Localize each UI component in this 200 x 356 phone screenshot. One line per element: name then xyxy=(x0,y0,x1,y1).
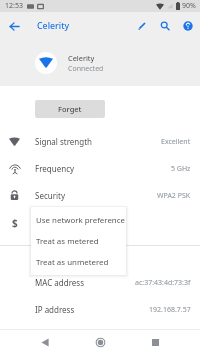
staticText: Connected xyxy=(68,64,104,74)
staticText: ac:37:43:4d:73:3f xyxy=(135,278,191,288)
button[interactable]: MAC address xyxy=(0,269,200,296)
staticText: Security xyxy=(35,190,66,201)
staticText: WPA2 PSK xyxy=(157,191,191,201)
staticText: Celerity xyxy=(68,53,95,63)
staticText: Treat as metered xyxy=(36,236,99,247)
button[interactable]: Use network preference xyxy=(31,210,126,231)
staticText: Celerity xyxy=(37,20,70,32)
button[interactable]: Recent apps xyxy=(140,329,170,356)
staticText: 5 GHz xyxy=(171,164,191,174)
button[interactable]: Frequency xyxy=(0,155,200,182)
button[interactable]: Search xyxy=(154,15,176,37)
staticText: 192.168.7.57 xyxy=(149,305,191,315)
button[interactable]: Home xyxy=(85,329,115,356)
button[interactable]: Forget xyxy=(35,100,105,118)
staticText: Use network preference xyxy=(36,215,125,226)
staticText: Gateway xyxy=(35,331,68,342)
button[interactable]: Security xyxy=(0,182,200,209)
staticText: Network usage xyxy=(35,217,92,228)
button[interactable]: IP address xyxy=(0,296,200,323)
staticText: 90% xyxy=(182,1,196,11)
staticText: $ xyxy=(12,216,18,229)
button[interactable]: Treat as unmetered xyxy=(31,252,126,273)
staticText: Signal strength xyxy=(35,136,93,147)
staticText: 192.168.7.1 xyxy=(153,332,191,342)
button[interactable]: Signal strength xyxy=(0,128,200,155)
staticText: Excellent xyxy=(161,137,191,147)
button[interactable]: Edit xyxy=(131,15,153,37)
button[interactable]: Navigate up xyxy=(0,12,28,40)
staticText: MAC address xyxy=(35,277,84,288)
staticText: Forget xyxy=(58,104,82,114)
button[interactable]: Back xyxy=(30,329,60,356)
button[interactable]: Help xyxy=(177,15,199,37)
button[interactable]: $ xyxy=(0,209,200,236)
button[interactable]: Gateway xyxy=(0,323,200,350)
staticText: IP address xyxy=(35,304,75,315)
button[interactable]: Treat as metered xyxy=(31,231,126,252)
staticText: Frequency xyxy=(35,163,75,174)
staticText: Treat as unmetered xyxy=(36,257,109,268)
staticText: 12:53 xyxy=(5,1,23,11)
